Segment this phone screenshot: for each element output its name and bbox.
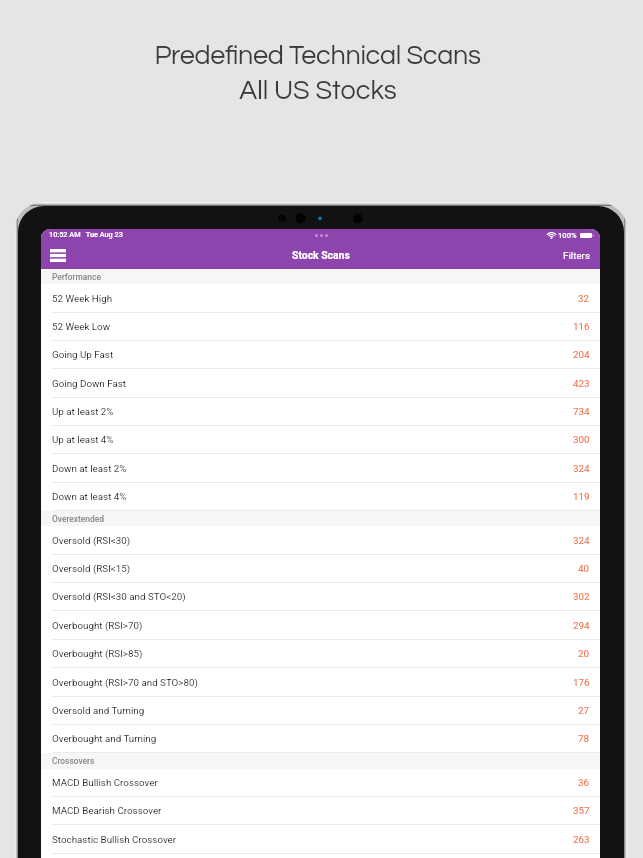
staticText: Oversold (RSI<30) (52, 535, 131, 546)
button[interactable]: Oversold and Turning (41, 697, 600, 725)
staticText: Down at least 4% (52, 491, 127, 502)
staticText: 100% (558, 231, 577, 240)
button[interactable]: Going Up Fast (41, 341, 600, 369)
staticText: 204 (573, 349, 590, 360)
button[interactable]: Going Down Fast (41, 369, 600, 398)
staticText: 176 (573, 677, 590, 688)
staticText: Predefined Technical Scans (154, 42, 481, 70)
button[interactable]: Overbought (RSI>70) (41, 611, 600, 640)
staticText: 27 (578, 705, 590, 716)
button[interactable]: Oversold (RSI<30 and STO<20) (41, 583, 600, 611)
button[interactable]: MACD Bullish Crossover (41, 769, 600, 797)
staticText: 116 (573, 321, 590, 332)
staticText: Performance (52, 272, 101, 282)
button[interactable]: MACD Bearish Crossover (41, 797, 600, 825)
staticText: 300 (573, 434, 590, 445)
staticText: MACD Bullish Crossover (52, 777, 158, 788)
button[interactable]: 52 Week High (41, 284, 600, 313)
staticText: 36 (578, 777, 590, 788)
button[interactable]: Overbought and Turning (41, 725, 600, 753)
button[interactable]: Overbought (RSI>70 and STO>80) (41, 668, 600, 697)
button[interactable]: Down at least 2% (41, 454, 600, 483)
button[interactable]: Overbought (RSI>85) (41, 640, 600, 668)
button[interactable]: Oversold (RSI<15) (41, 555, 600, 583)
staticText: 734 (573, 406, 590, 417)
button[interactable]: Up at least 2% (41, 398, 600, 426)
staticText: Crossovers (52, 756, 95, 766)
staticText: 302 (573, 591, 590, 602)
staticText: 324 (573, 535, 590, 546)
staticText: 357 (573, 805, 590, 816)
staticText: Filters (563, 250, 590, 261)
staticText: Overbought (RSI>70 and STO>80) (52, 677, 198, 688)
button[interactable]: Up at least 4% (41, 426, 600, 454)
staticText: Overbought (RSI>85) (52, 648, 143, 659)
button[interactable]: Stochastic Bullish Crossover (41, 825, 600, 854)
staticText: Down at least 2% (52, 463, 127, 474)
staticText: 324 (573, 463, 590, 474)
staticText: Up at least 2% (52, 406, 114, 417)
staticText: 294 (573, 620, 590, 631)
staticText: 119 (573, 491, 590, 502)
staticText: 78 (578, 733, 590, 744)
staticText: 40 (578, 563, 590, 574)
staticText: Overbought and Turning (52, 733, 157, 744)
button[interactable]: Filters (553, 242, 600, 269)
button[interactable]: Oversold (RSI<30) (41, 526, 600, 555)
staticText: 263 (573, 834, 590, 845)
staticText: 32 (578, 293, 590, 304)
staticText: All US Stocks (239, 77, 397, 105)
staticText: 423 (573, 378, 590, 389)
staticText: Oversold and Turning (52, 705, 145, 716)
staticText: Stochastic Bullish Crossover (52, 834, 177, 845)
button[interactable]: Down at least 4% (41, 483, 600, 511)
staticText: Oversold (RSI<30 and STO<20) (52, 591, 186, 602)
staticText: 20 (578, 648, 590, 659)
staticText: Overbought (RSI>70) (52, 620, 143, 631)
staticText: Oversold (RSI<15) (52, 563, 131, 574)
staticText: MACD Bearish Crossover (52, 805, 162, 816)
staticText: 52 Week High (52, 293, 113, 304)
staticText: 10:52 AM Tue Aug 23 (49, 230, 123, 239)
button[interactable]: 52 Week Low (41, 313, 600, 341)
staticText: Going Up Fast (52, 349, 114, 360)
staticText: Overextended (52, 514, 104, 524)
button[interactable]: Open navigation menu (41, 242, 74, 269)
staticText: Stock Scans (292, 249, 350, 261)
staticText: Up at least 4% (52, 434, 114, 445)
staticText: 52 Week Low (52, 321, 110, 332)
staticText: Going Down Fast (52, 378, 127, 389)
